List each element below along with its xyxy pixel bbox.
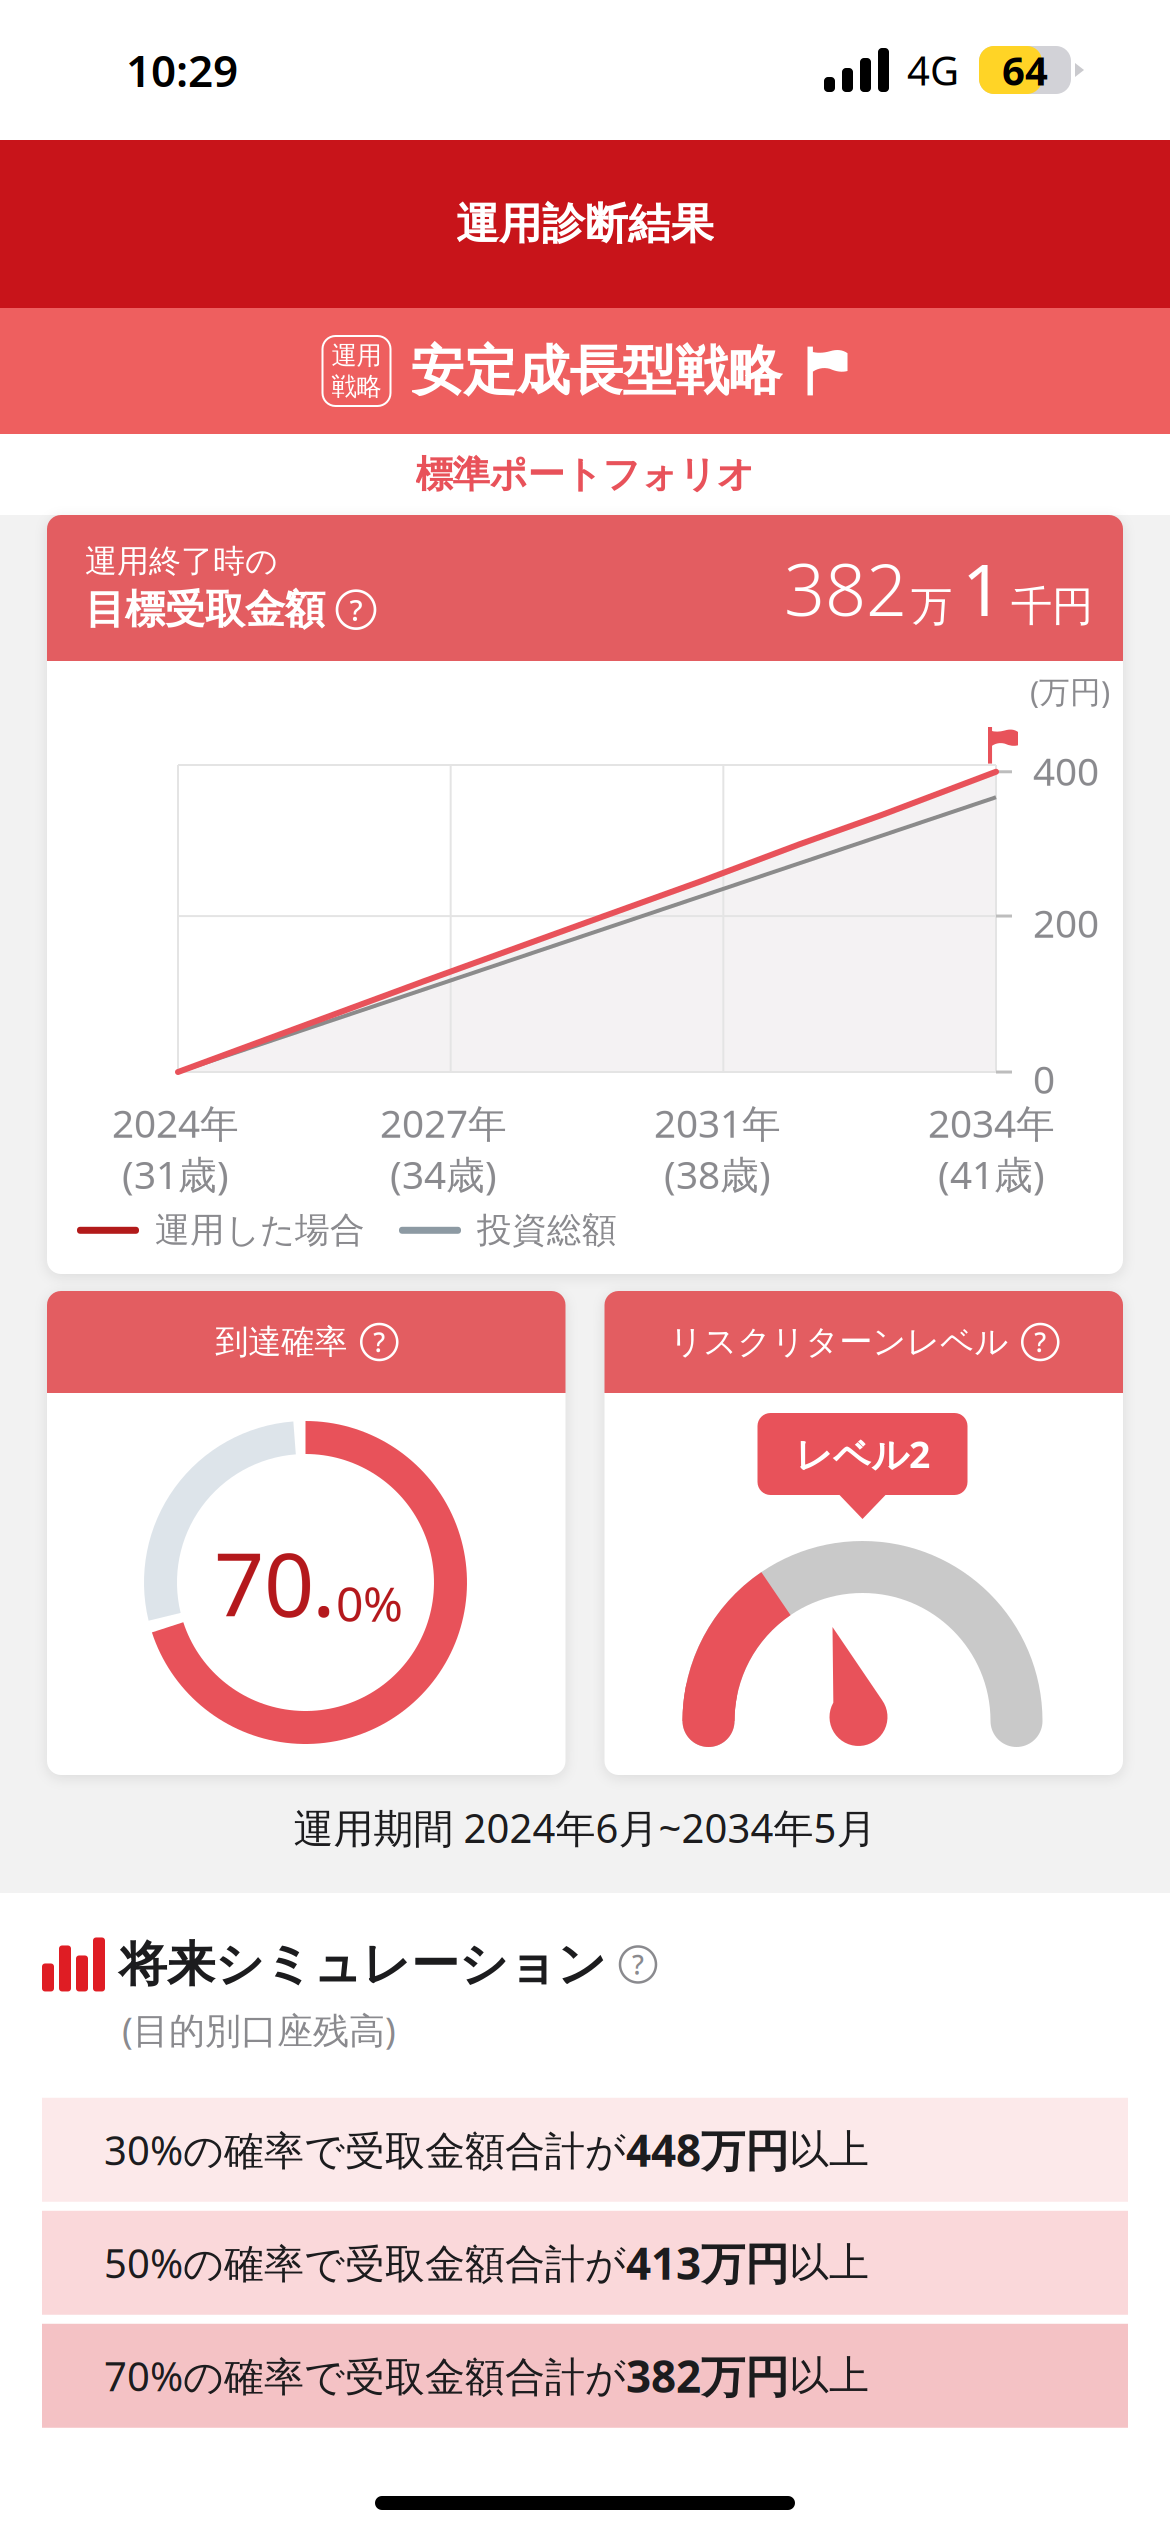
staticText: 以上	[789, 2125, 869, 2174]
staticText: 2027年	[380, 1097, 507, 1148]
staticText: 64	[1002, 43, 1048, 96]
staticText: 200	[1033, 897, 1099, 948]
staticText: 安定成長型戦略	[410, 338, 781, 404]
staticText: 運用診断結果	[456, 198, 714, 250]
staticText: 70%の確率で受取金額合計が	[104, 2349, 626, 2402]
staticText: 413万円	[626, 2233, 789, 2292]
staticText: 到達確率	[215, 1321, 347, 1362]
staticText: ?	[373, 1324, 385, 1360]
staticText: (41歳)	[938, 1148, 1045, 1200]
button[interactable]: リスクリターンレベルの説明	[1022, 1324, 1058, 1360]
staticText: リスクリターンレベル	[669, 1321, 1008, 1362]
staticText: (目的別口座残高)	[122, 2006, 396, 2054]
staticText: 0	[1033, 1053, 1055, 1104]
staticText: 4G	[907, 43, 959, 96]
staticText: 投資総額	[477, 1209, 617, 1252]
staticText: 以上	[789, 2238, 869, 2287]
staticText: 2031年	[654, 1097, 781, 1148]
button[interactable]: 50%の確率で受取金額合計が	[42, 2211, 1128, 2315]
staticText: 将来シミュレーション	[119, 1935, 606, 1994]
staticText: 400	[1033, 745, 1099, 796]
button[interactable]: 将来シミュレーションの説明	[620, 1946, 656, 1982]
staticText: 運用	[331, 340, 381, 371]
staticText: .	[312, 1524, 336, 1641]
staticText: 運用終了時の	[85, 542, 278, 581]
button[interactable]: 到達確率の説明	[361, 1324, 397, 1360]
button[interactable]: 70%の確率で受取金額合計が	[42, 2324, 1128, 2428]
staticText: ?	[1034, 1324, 1046, 1360]
button[interactable]: 目標受取金額の説明	[337, 591, 375, 629]
staticText: ?	[632, 1947, 644, 1982]
staticText: 0%	[336, 1571, 403, 1635]
staticText: 2034年	[928, 1097, 1055, 1148]
staticText: 標準ポートフォリオ	[415, 452, 754, 497]
staticText: 戦略	[331, 371, 381, 402]
staticText: 30%の確率で受取金額合計が	[104, 2123, 626, 2176]
staticText: (31歳)	[122, 1148, 229, 1200]
staticText: 382	[784, 540, 907, 636]
staticText: (38歳)	[664, 1148, 771, 1200]
button[interactable]: 30%の確率で受取金額合計が	[42, 2098, 1128, 2202]
staticText: 運用した場合	[155, 1209, 365, 1252]
staticText: 千円	[1011, 581, 1093, 632]
staticText: 10:29	[126, 41, 238, 99]
staticText: 448万円	[626, 2120, 789, 2179]
staticText: (万円)	[1030, 671, 1110, 712]
staticText: 運用期間 2024年6月~2034年5月	[293, 1801, 876, 1854]
staticText: 以上	[789, 2351, 869, 2400]
staticText: 50%の確率で受取金額合計が	[104, 2236, 626, 2289]
staticText: 2024年	[112, 1097, 239, 1148]
staticText: ?	[349, 590, 362, 629]
staticText: (34歳)	[390, 1148, 497, 1200]
staticText: レベル2	[795, 1429, 930, 1479]
staticText: 目標受取金額	[85, 585, 325, 634]
staticText: 万	[911, 581, 952, 632]
staticText: 70	[214, 1524, 314, 1641]
staticText: 382万円	[626, 2346, 789, 2405]
staticText: 1	[962, 540, 1003, 636]
